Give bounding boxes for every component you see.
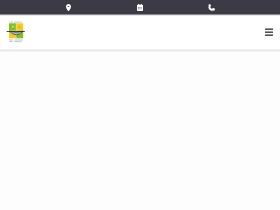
button[interactable]: Open navigation menu <box>260 23 278 41</box>
button[interactable]: Opening hours calendar <box>128 0 152 14</box>
button[interactable]: Call us <box>199 0 223 14</box>
button[interactable]: Find us on the map <box>56 0 80 14</box>
button[interactable]: Home <box>6 22 26 44</box>
